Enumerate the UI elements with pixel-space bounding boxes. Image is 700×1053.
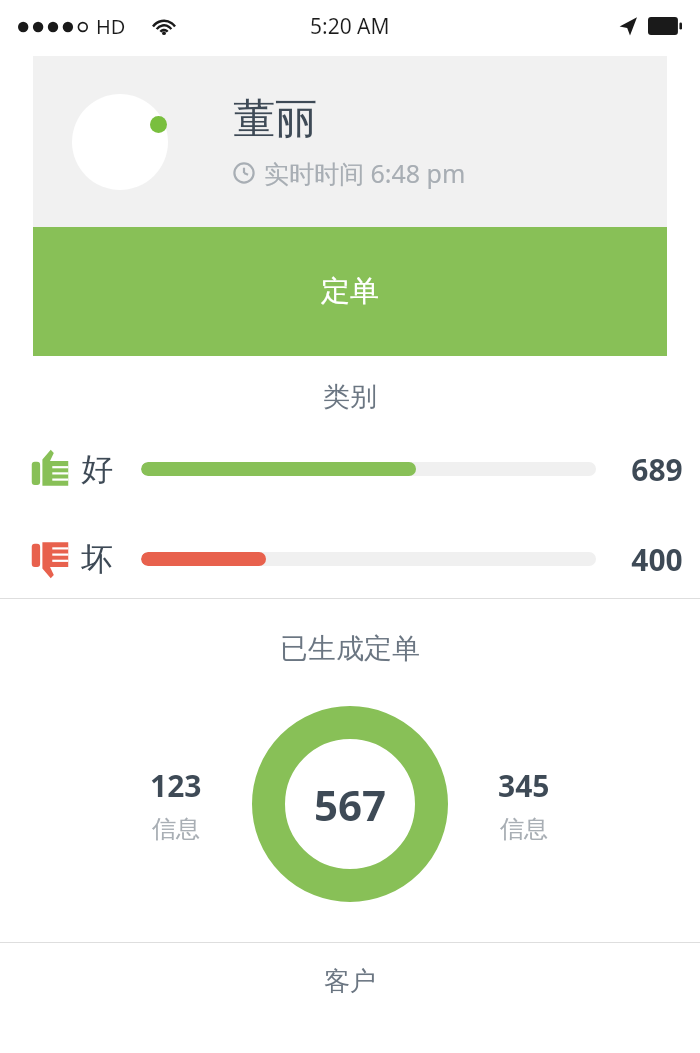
staticText: 信息 (500, 814, 548, 844)
staticText: 坏 (81, 539, 113, 579)
staticText: 实时时间 6:48 pm (264, 156, 466, 190)
staticText: 567 (314, 776, 387, 833)
staticText: 信息 (152, 814, 200, 844)
staticText: HD (96, 13, 126, 40)
staticText: 123 (150, 765, 202, 806)
staticText: 400 (614, 539, 700, 580)
other: Good (31, 449, 69, 489)
staticText: 好 (81, 449, 113, 489)
button[interactable]: 董丽 (33, 56, 667, 227)
staticText: 5:20 AM (310, 12, 390, 41)
staticText: 已生成定单 (280, 631, 420, 666)
button[interactable]: Bad (0, 536, 700, 582)
staticText: 董丽 (233, 93, 317, 146)
staticText: 客户 (0, 965, 700, 998)
staticText: 类别 (0, 380, 700, 414)
staticText: 345 (498, 765, 550, 806)
staticText: 定单 (321, 273, 379, 310)
other: Bad (31, 539, 69, 579)
staticText: 689 (614, 449, 700, 490)
button[interactable]: 定单 (33, 227, 667, 356)
button[interactable]: Good (0, 446, 700, 492)
